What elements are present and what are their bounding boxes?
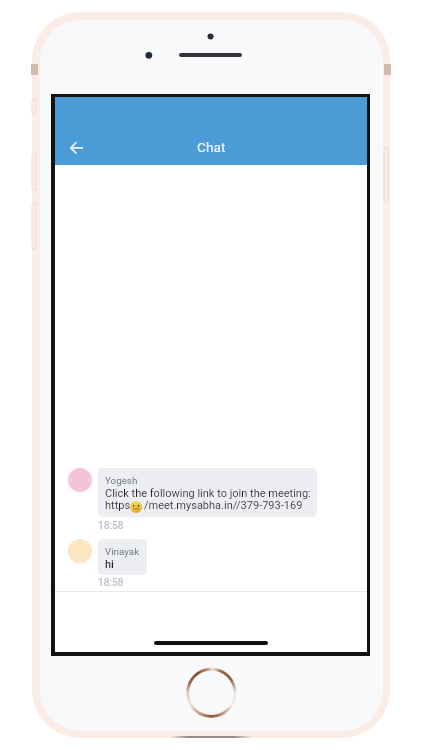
staticText: 18:58 bbox=[98, 577, 124, 589]
button[interactable]: Yogesh bbox=[98, 468, 317, 517]
staticText: /meet.mysabha.in//379-793-169 bbox=[144, 499, 303, 512]
staticText: hi bbox=[105, 558, 114, 571]
staticText: https bbox=[105, 499, 131, 512]
staticText: Click the following link to join the mee… bbox=[105, 487, 311, 500]
staticText: Yogesh bbox=[105, 475, 138, 486]
staticText: Vinayak bbox=[105, 546, 140, 557]
button[interactable]: Back bbox=[56, 133, 87, 164]
staticText: 18:58 bbox=[98, 520, 124, 532]
button[interactable]: Vinayak bbox=[98, 539, 147, 575]
staticText: Chat bbox=[197, 139, 226, 155]
